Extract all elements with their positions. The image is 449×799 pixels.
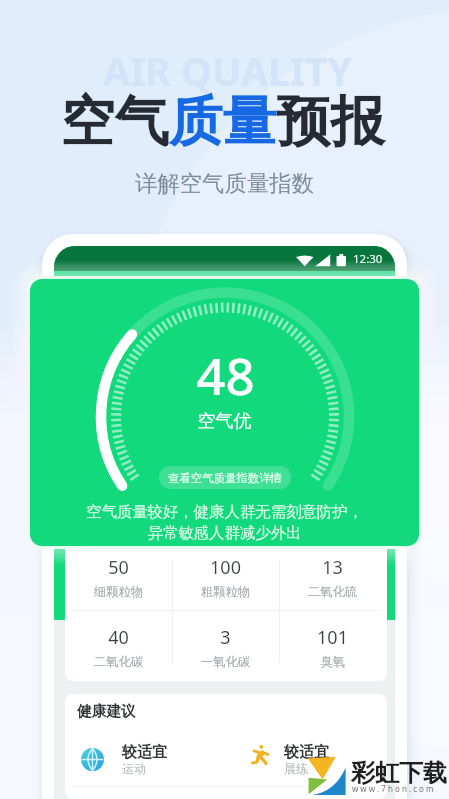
staticText: 查看空气质量指数详情 (168, 471, 282, 485)
button[interactable]: 13 (279, 541, 386, 611)
staticText: 较适宜 (284, 743, 329, 762)
staticText: w w w . 7 h o n . c o m (352, 783, 434, 794)
staticText: 二氧化硫 (279, 584, 386, 600)
staticText: 40 (65, 625, 172, 650)
staticText: 运动 (122, 761, 146, 776)
staticText: 健康建议 (77, 702, 136, 721)
button[interactable]: 查看空气质量指数详情 (159, 466, 291, 489)
staticText: 13 (279, 555, 386, 580)
staticText: 48 (31, 340, 419, 409)
staticText: AIR QUALITY (3, 44, 449, 97)
button[interactable]: 100 (172, 541, 279, 611)
button[interactable]: 较适宜 (81, 743, 211, 783)
staticText: 二氧化碳 (65, 654, 172, 670)
staticText: 晨练 (284, 761, 308, 776)
button[interactable]: 101 (279, 611, 386, 681)
staticText: 细颗粒物 (65, 584, 172, 600)
staticText: 101 (279, 625, 386, 650)
staticText: 彩虹下载 (351, 758, 447, 788)
staticText: 较适宜 (122, 743, 167, 762)
staticText: 粗颗粒物 (172, 584, 279, 600)
button[interactable]: 50 (65, 541, 172, 611)
staticText: 详解空气质量指数 (0, 169, 449, 197)
staticText: 12:30 (353, 251, 383, 267)
staticText: 空气质量较好，健康人群无需刻意防护， 异常敏感人群减少外出 (30, 502, 419, 543)
staticText: 一氧化碳 (172, 654, 279, 670)
button[interactable]: 40 (65, 611, 172, 681)
button[interactable]: 较适宜 (249, 743, 379, 783)
staticText: 100 (172, 555, 279, 580)
staticText: 臭氧 (279, 654, 386, 670)
button[interactable]: 3 (172, 611, 279, 681)
staticText: 3 (172, 625, 279, 650)
staticText: 50 (65, 555, 172, 580)
staticText: 空气质量预报 (0, 88, 447, 156)
other: Status icons (296, 252, 346, 267)
staticText: 空气优 (30, 410, 419, 433)
